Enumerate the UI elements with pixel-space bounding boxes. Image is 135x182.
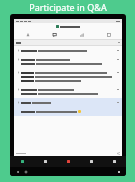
button[interactable]: Polls: [68, 30, 95, 39]
button[interactable]: Mute: [10, 156, 34, 167]
button[interactable]: Back: [16, 170, 19, 173]
button[interactable]: Leave meeting: [57, 156, 80, 167]
staticText: Participate in Q&A: [29, 1, 107, 13]
button[interactable]: [14, 55, 122, 68]
button[interactable]: People: [14, 30, 41, 39]
button[interactable]: Share: [80, 156, 103, 167]
button[interactable]: Camera: [34, 156, 57, 167]
button[interactable]: [14, 98, 122, 107]
button[interactable]: Home: [24, 170, 27, 173]
button[interactable]: [14, 150, 122, 156]
button[interactable]: [14, 46, 122, 55]
button[interactable]: Q and A: [41, 30, 68, 39]
button[interactable]: Recent apps: [117, 170, 120, 173]
button[interactable]: [14, 85, 122, 98]
button[interactable]: More options: [103, 156, 126, 167]
button[interactable]: [14, 68, 122, 85]
button[interactable]: [14, 107, 122, 116]
button[interactable]: Files: [95, 30, 122, 39]
